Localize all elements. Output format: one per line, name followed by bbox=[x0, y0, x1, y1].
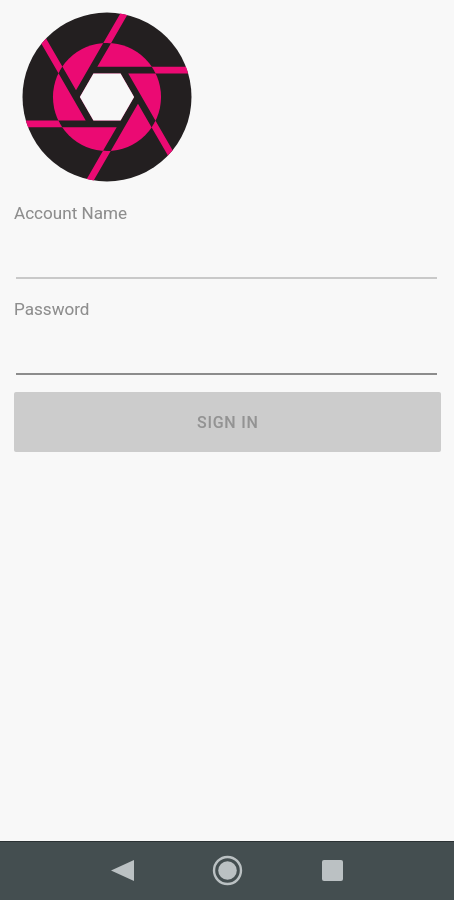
staticText: Account Name bbox=[14, 203, 128, 223]
button[interactable]: Recent apps bbox=[284, 841, 380, 900]
button[interactable]: Home bbox=[179, 841, 275, 900]
button[interactable]: Back bbox=[74, 841, 170, 900]
staticText: SIGN IN bbox=[197, 413, 259, 432]
staticText: Password bbox=[14, 299, 90, 319]
button[interactable]: SIGN IN bbox=[14, 392, 441, 452]
